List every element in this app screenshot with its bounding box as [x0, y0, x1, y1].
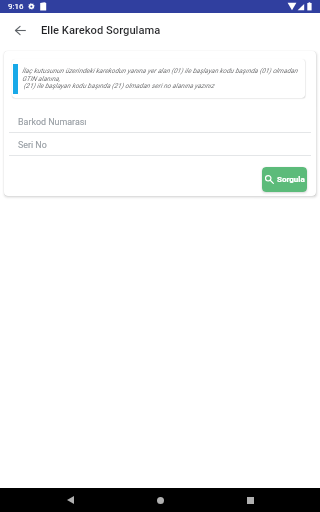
button[interactable]: Seri No	[9, 140, 311, 156]
button[interactable]: Back	[50, 488, 90, 512]
staticText: İlaç kutusunun üzerindeki karekodun yanı…	[22, 67, 305, 89]
button[interactable]: Recent apps	[230, 488, 270, 512]
staticText: Elle Karekod Sorgulama	[41, 24, 161, 37]
button[interactable]: Home	[140, 488, 180, 512]
staticText: Barkod Numarası	[18, 117, 87, 127]
button[interactable]: Back	[0, 13, 38, 50]
staticText: Sorgula	[277, 175, 305, 184]
button[interactable]: Sorgula	[262, 167, 307, 192]
staticText: Seri No	[18, 140, 47, 150]
staticText: 9:16	[8, 2, 24, 11]
button[interactable]: Barkod Numarası	[9, 117, 311, 133]
